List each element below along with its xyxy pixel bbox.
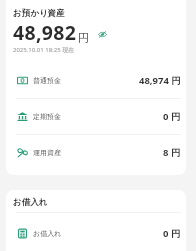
button[interactable]: 残高を表示 (98, 30, 107, 39)
staticText: 運用資産 (33, 148, 61, 157)
staticText: 円 (78, 31, 89, 45)
button[interactable]: 普通預金 (6, 63, 186, 98)
staticText: 定期預金 (33, 112, 61, 121)
staticText: 8 円 (163, 146, 181, 159)
button[interactable]: 定期預金 (6, 99, 186, 134)
staticText: 0 円 (163, 227, 181, 240)
button[interactable]: 運用資産 (6, 135, 186, 170)
staticText: 2025.10.01 18:25 現在 (13, 46, 75, 54)
staticText: お借入れ (33, 229, 62, 238)
staticText: 48,974 円 (139, 74, 181, 87)
staticText: 48,982 (13, 19, 77, 46)
staticText: お預かり資産 (13, 8, 65, 19)
staticText: 普通預金 (33, 76, 61, 85)
button[interactable]: お借入れ (6, 216, 186, 251)
staticText: お借入れ (13, 197, 48, 208)
staticText: 0 円 (163, 110, 181, 123)
